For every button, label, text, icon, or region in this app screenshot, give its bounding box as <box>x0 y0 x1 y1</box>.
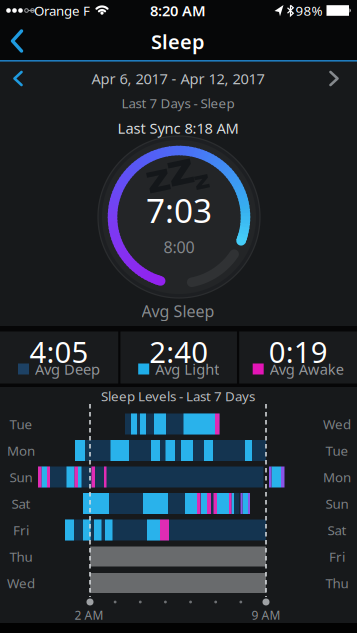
staticText: Avg Light <box>155 359 219 379</box>
button[interactable]: Previous week <box>1 61 35 95</box>
staticText: Thu <box>9 548 32 565</box>
staticText: Avg Sleep <box>141 300 214 322</box>
staticText: Sun <box>325 495 348 512</box>
staticText: Orange F <box>34 2 90 19</box>
button[interactable]: Back <box>0 20 34 62</box>
staticText: Last 7 Days - Sleep <box>121 94 234 112</box>
staticText: Wed <box>7 574 35 592</box>
staticText: 2 AM <box>74 607 103 623</box>
staticText: 9 AM <box>251 607 280 623</box>
staticText: Wed <box>323 415 351 433</box>
staticText: Sat <box>11 495 30 512</box>
staticText: Tue <box>9 415 32 433</box>
staticText: 2:40 <box>149 332 208 371</box>
staticText: Avg Deep <box>35 359 100 379</box>
staticText: 98% <box>295 2 322 19</box>
staticText: 8:20 AM <box>150 1 206 20</box>
staticText: 4:05 <box>29 332 88 371</box>
staticText: Mon <box>7 442 35 459</box>
staticText: Tue <box>325 442 348 459</box>
staticText: Last Sync 8:18 AM <box>117 118 238 138</box>
staticText: Avg Awake <box>270 359 344 379</box>
staticText: Sleep <box>151 28 205 55</box>
staticText: Sleep Levels - Last 7 Days <box>101 387 255 405</box>
staticText: Fri <box>13 521 29 539</box>
staticText: 8:00 <box>163 236 194 258</box>
staticText: Fri <box>329 548 345 565</box>
staticText: 0:19 <box>269 332 328 371</box>
button[interactable]: Next week <box>317 61 351 95</box>
staticText: Thu <box>325 574 348 592</box>
staticText: Mon <box>323 468 351 486</box>
staticText: Sat <box>327 521 346 539</box>
staticText: Sun <box>9 468 32 486</box>
staticText: 7:03 <box>146 188 212 232</box>
staticText: Apr 6, 2017 - Apr 12, 2017 <box>91 69 264 88</box>
